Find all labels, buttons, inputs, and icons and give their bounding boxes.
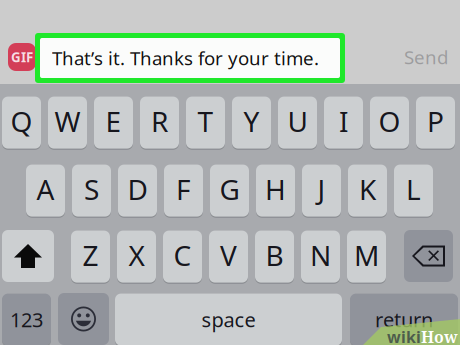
staticText: G	[219, 170, 239, 208]
button[interactable]: W	[48, 96, 87, 149]
button[interactable]: T	[186, 96, 225, 149]
button[interactable]: Emoji	[58, 293, 109, 345]
staticText: O	[378, 102, 400, 140]
staticText: I	[339, 102, 348, 140]
staticText: GIF	[11, 48, 33, 66]
button[interactable]: F	[164, 164, 203, 217]
button[interactable]: K	[348, 164, 387, 217]
staticText: C	[173, 236, 191, 274]
button[interactable]: Z	[71, 230, 110, 283]
button[interactable]: X	[117, 230, 156, 283]
button[interactable]: N	[301, 230, 340, 283]
button[interactable]: M	[347, 230, 386, 283]
button[interactable]: D	[118, 164, 157, 217]
button[interactable]: C	[163, 230, 202, 283]
staticText: wiki	[387, 326, 421, 345]
staticText: T	[197, 102, 213, 140]
button[interactable]: J	[302, 164, 341, 217]
staticText: space	[201, 306, 255, 333]
button[interactable]: O	[370, 96, 409, 149]
button[interactable]: P	[416, 96, 455, 149]
staticText: P	[427, 102, 444, 140]
button[interactable]: Shift	[2, 230, 54, 282]
button[interactable]: A	[26, 164, 65, 217]
button[interactable]: I	[324, 96, 363, 149]
button[interactable]: GIF	[8, 43, 36, 71]
button[interactable]: G	[210, 164, 249, 217]
staticText: H	[265, 170, 286, 208]
staticText: W	[54, 102, 80, 140]
staticText: 123	[10, 306, 43, 333]
staticText: V	[220, 236, 237, 274]
button[interactable]: H	[256, 164, 295, 217]
staticText: M	[354, 236, 379, 274]
button[interactable]: 123	[2, 293, 51, 345]
button[interactable]: E	[94, 96, 133, 149]
button[interactable]: L	[394, 164, 433, 217]
staticText: E	[105, 102, 121, 140]
staticText: Y	[243, 102, 259, 140]
staticText: R	[151, 102, 168, 140]
staticText: S	[84, 170, 99, 208]
staticText: B	[265, 236, 283, 274]
staticText: Z	[82, 236, 98, 274]
staticText: L	[406, 170, 421, 208]
staticText: N	[310, 236, 331, 274]
staticText: return	[375, 306, 433, 333]
button[interactable]: Q	[2, 96, 41, 149]
staticText: That’s it. Thanks for your time.	[52, 45, 319, 71]
button[interactable]: space	[115, 293, 342, 345]
staticText: D	[127, 170, 147, 208]
button[interactable]: B	[255, 230, 294, 283]
button[interactable]: S	[72, 164, 111, 217]
staticText: Send	[404, 44, 448, 70]
button[interactable]: Delete	[404, 230, 453, 282]
button[interactable]: R	[140, 96, 179, 149]
button[interactable]: U	[278, 96, 317, 149]
staticText: X	[128, 236, 144, 274]
button[interactable]: V	[209, 230, 248, 283]
button[interactable]: Send	[395, 44, 457, 70]
staticText: J	[317, 170, 325, 208]
button[interactable]: Y	[232, 96, 271, 149]
button[interactable]: That’s it. Thanks for your time.	[35, 33, 345, 83]
staticText: U	[287, 102, 307, 140]
staticText: F	[176, 170, 191, 208]
staticText: How	[421, 326, 458, 345]
staticText: Q	[10, 102, 32, 140]
button[interactable]: return	[350, 293, 458, 345]
staticText: K	[359, 170, 376, 208]
staticText: A	[36, 170, 54, 208]
